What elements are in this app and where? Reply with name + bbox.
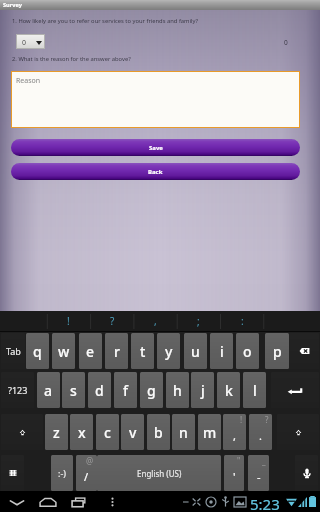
button[interactable]: u bbox=[184, 333, 207, 369]
staticText: f bbox=[123, 381, 128, 400]
staticText: c bbox=[104, 423, 111, 442]
staticText: 2. What is the reason for the answer abo… bbox=[12, 55, 131, 63]
staticText: Tab bbox=[6, 345, 21, 357]
button[interactable]: . bbox=[249, 414, 272, 450]
button[interactable]: Backspace bbox=[289, 333, 319, 369]
button[interactable]: w bbox=[52, 333, 75, 369]
button[interactable]: d bbox=[88, 372, 111, 408]
button[interactable]: b bbox=[147, 414, 170, 450]
staticText: a bbox=[44, 381, 53, 400]
staticText: , bbox=[154, 314, 157, 328]
button[interactable]: i bbox=[210, 333, 233, 369]
staticText: s bbox=[70, 381, 77, 400]
staticText: :-) bbox=[58, 467, 67, 479]
button[interactable]: Hide keyboard bbox=[6, 495, 28, 509]
staticText: English (US) bbox=[137, 468, 182, 479]
staticText: : bbox=[241, 314, 244, 328]
button[interactable]: ?123 bbox=[1, 372, 34, 408]
staticText: ? bbox=[265, 414, 269, 425]
staticText: @ bbox=[86, 455, 94, 466]
button[interactable]: n bbox=[172, 414, 195, 450]
button[interactable]: ! bbox=[47, 311, 90, 332]
staticText: r bbox=[114, 342, 120, 361]
staticText: q bbox=[33, 342, 42, 361]
button[interactable]: ' bbox=[224, 455, 244, 491]
staticText: j bbox=[201, 381, 205, 400]
staticText: Save bbox=[149, 144, 163, 152]
button[interactable]: Enter bbox=[271, 372, 319, 408]
button[interactable]: a bbox=[37, 372, 60, 408]
button[interactable]: :-) bbox=[51, 455, 73, 491]
button[interactable]: / bbox=[76, 455, 97, 491]
staticText: . bbox=[259, 428, 262, 443]
button[interactable]: y bbox=[157, 333, 180, 369]
staticText: p bbox=[273, 342, 282, 361]
staticText: _ bbox=[262, 455, 266, 466]
staticText: 0 bbox=[22, 38, 27, 48]
button[interactable]: Back bbox=[11, 163, 300, 180]
button[interactable]: : bbox=[221, 311, 264, 332]
button[interactable]: English (US) bbox=[97, 455, 221, 491]
button[interactable]: v bbox=[121, 414, 144, 450]
staticText: h bbox=[173, 381, 182, 400]
staticText: , bbox=[233, 428, 236, 443]
button[interactable]: z bbox=[45, 414, 68, 450]
staticText: 0 bbox=[284, 38, 288, 47]
button[interactable]: o bbox=[236, 333, 259, 369]
button[interactable]: g bbox=[140, 372, 163, 408]
staticText: Back bbox=[148, 168, 163, 176]
button[interactable]: Voice input bbox=[295, 455, 318, 491]
button[interactable]: h bbox=[166, 372, 189, 408]
button[interactable]: , bbox=[134, 311, 177, 332]
staticText: g bbox=[147, 381, 156, 400]
staticText: ! bbox=[67, 314, 70, 328]
button[interactable]: s bbox=[62, 372, 85, 408]
staticText: Survey bbox=[3, 1, 22, 9]
button[interactable]: ? bbox=[91, 311, 134, 332]
staticText: Reason bbox=[16, 76, 41, 86]
staticText: w bbox=[58, 342, 70, 361]
button[interactable]: k bbox=[217, 372, 240, 408]
button[interactable]: ; bbox=[177, 311, 220, 332]
button[interactable]: Shift bbox=[277, 414, 319, 450]
staticText: ?123 bbox=[8, 384, 28, 396]
staticText: ? bbox=[110, 314, 115, 328]
button[interactable]: p bbox=[265, 333, 289, 369]
staticText: 1. How likely are you to refer our servi… bbox=[12, 17, 199, 25]
button[interactable]: f bbox=[114, 372, 137, 408]
button[interactable]: Input settings bbox=[1, 455, 24, 491]
button[interactable]: Save bbox=[11, 139, 300, 156]
staticText: ; bbox=[197, 314, 200, 328]
button[interactable]: Home bbox=[37, 495, 59, 509]
button[interactable]: Tab bbox=[1, 333, 25, 369]
button[interactable]: Shift bbox=[1, 414, 43, 450]
staticText: ' bbox=[233, 469, 236, 484]
button[interactable]: l bbox=[243, 372, 266, 408]
staticText: x bbox=[78, 423, 86, 442]
button[interactable]: j bbox=[191, 372, 214, 408]
button[interactable]: m bbox=[198, 414, 221, 450]
staticText: i bbox=[220, 342, 224, 361]
button[interactable]: q bbox=[26, 333, 49, 369]
button[interactable]: - bbox=[248, 455, 269, 491]
staticText: u bbox=[191, 342, 200, 361]
button[interactable]: c bbox=[96, 414, 119, 450]
staticText: n bbox=[179, 423, 188, 442]
staticText: l bbox=[253, 381, 257, 400]
button[interactable]: r bbox=[105, 333, 128, 369]
staticText: - bbox=[257, 469, 261, 484]
button[interactable]: 0 bbox=[16, 34, 45, 49]
staticText: b bbox=[154, 423, 163, 442]
button[interactable]: , bbox=[223, 414, 246, 450]
staticText: e bbox=[86, 342, 95, 361]
button[interactable]: e bbox=[79, 333, 102, 369]
button[interactable]: x bbox=[70, 414, 93, 450]
button[interactable]: t bbox=[131, 333, 154, 369]
staticText: o bbox=[243, 342, 252, 361]
staticText: t bbox=[140, 342, 146, 361]
staticText: z bbox=[53, 423, 60, 442]
staticText: k bbox=[225, 381, 233, 400]
button[interactable]: Recent apps bbox=[69, 495, 91, 509]
button[interactable]: More options bbox=[106, 496, 119, 508]
staticText: " bbox=[237, 455, 241, 466]
